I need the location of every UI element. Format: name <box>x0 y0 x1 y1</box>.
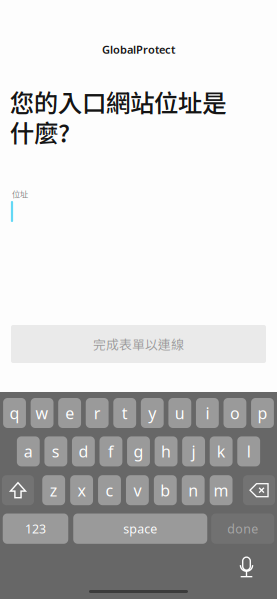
button[interactable]: c <box>98 475 121 505</box>
staticText: 123 <box>25 520 46 537</box>
button[interactable]: a <box>17 436 40 466</box>
button[interactable]: t <box>113 398 136 428</box>
button[interactable]: g <box>127 436 150 466</box>
button[interactable]: i <box>196 398 219 428</box>
staticText: h <box>161 440 171 462</box>
button[interactable]: 完成表單以連線 <box>11 325 266 363</box>
button[interactable]: e <box>58 398 81 428</box>
button[interactable]: y <box>141 398 164 428</box>
staticText: b <box>160 479 170 501</box>
staticText: o <box>230 402 240 424</box>
button[interactable]: n <box>182 475 205 505</box>
button[interactable]: Dictation <box>229 554 263 580</box>
staticText: done <box>227 520 258 537</box>
staticText: space <box>123 520 157 537</box>
staticText: 位址 <box>12 188 28 200</box>
staticText: s <box>52 440 60 462</box>
button[interactable]: b <box>154 475 177 505</box>
staticText: v <box>133 479 141 501</box>
staticText: 完成表單以連線 <box>93 335 184 353</box>
staticText: f <box>108 440 114 462</box>
button[interactable]: x <box>70 475 93 505</box>
button[interactable]: m <box>210 475 233 505</box>
button[interactable]: 123 <box>3 513 68 544</box>
staticText: z <box>50 479 58 501</box>
button[interactable]: Shift <box>2 475 34 505</box>
staticText: a <box>24 440 33 462</box>
staticText: m <box>214 479 229 501</box>
staticText: g <box>133 440 143 462</box>
staticText: l <box>247 440 251 462</box>
button[interactable]: s <box>44 436 67 466</box>
staticText: w <box>36 402 49 424</box>
staticText: q <box>9 402 19 424</box>
staticText: GlobalProtect <box>102 42 175 57</box>
button[interactable]: f <box>99 436 122 466</box>
staticText: 您的入口網站位址是什麼? <box>10 84 226 150</box>
button[interactable]: j <box>182 436 205 466</box>
button[interactable]: h <box>155 436 177 466</box>
button[interactable]: o <box>223 398 246 428</box>
button[interactable]: space <box>73 513 207 544</box>
staticText: x <box>78 479 86 501</box>
staticText: d <box>78 440 88 462</box>
button[interactable]: p <box>251 398 274 428</box>
staticText: r <box>94 402 101 424</box>
button[interactable]: z <box>42 475 65 505</box>
button[interactable]: r <box>86 398 109 428</box>
button[interactable]: v <box>126 475 149 505</box>
button[interactable]: k <box>210 436 233 466</box>
button[interactable]: l <box>237 436 260 466</box>
staticText: c <box>105 479 113 501</box>
staticText: i <box>205 402 209 424</box>
button[interactable]: u <box>168 398 191 428</box>
staticText: p <box>257 402 267 424</box>
button[interactable]: d <box>72 436 95 466</box>
staticText: t <box>122 402 128 424</box>
staticText: y <box>148 402 156 424</box>
staticText: u <box>175 402 185 424</box>
staticText: k <box>217 440 226 462</box>
staticText: e <box>65 402 74 424</box>
button[interactable]: done <box>211 513 274 544</box>
button[interactable]: w <box>31 398 54 428</box>
button[interactable]: q <box>3 398 26 428</box>
staticText: n <box>188 479 198 501</box>
staticText: j <box>192 440 196 462</box>
button[interactable]: Delete <box>243 475 275 505</box>
